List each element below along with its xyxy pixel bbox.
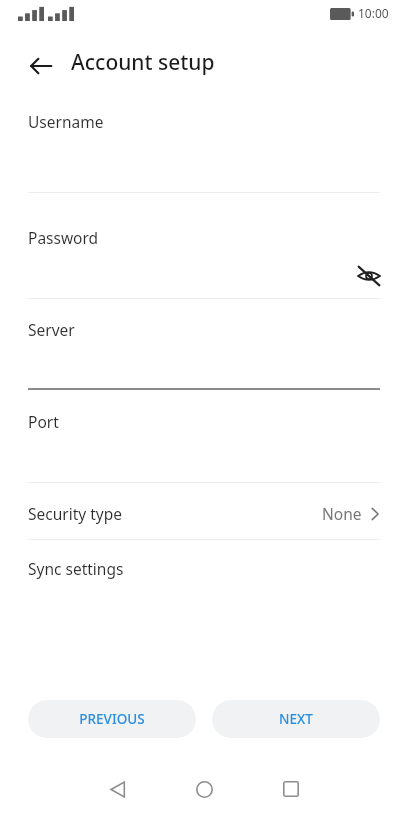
button[interactable]: Sync settings <box>0 545 408 591</box>
button[interactable]: Back <box>96 768 138 810</box>
staticText: 10:00 <box>358 5 389 21</box>
staticText: Server <box>28 319 75 340</box>
staticText: Sync settings <box>28 558 124 579</box>
button[interactable]: Show password <box>348 255 390 297</box>
staticText: None <box>322 503 362 524</box>
staticText: Account setup <box>71 48 215 77</box>
button[interactable]: Home <box>183 768 225 810</box>
button[interactable]: NEXT <box>212 700 380 738</box>
button[interactable]: Back <box>20 45 62 87</box>
button[interactable]: Recent apps <box>270 768 312 810</box>
staticText: Security type <box>28 503 122 524</box>
staticText: Username <box>28 111 104 132</box>
staticText: Password <box>28 227 99 248</box>
staticText: Port <box>28 411 59 432</box>
button[interactable]: Security type <box>0 488 408 539</box>
staticText: PREVIOUS <box>79 710 145 728</box>
staticText: NEXT <box>279 710 313 728</box>
button[interactable]: PREVIOUS <box>28 700 196 738</box>
